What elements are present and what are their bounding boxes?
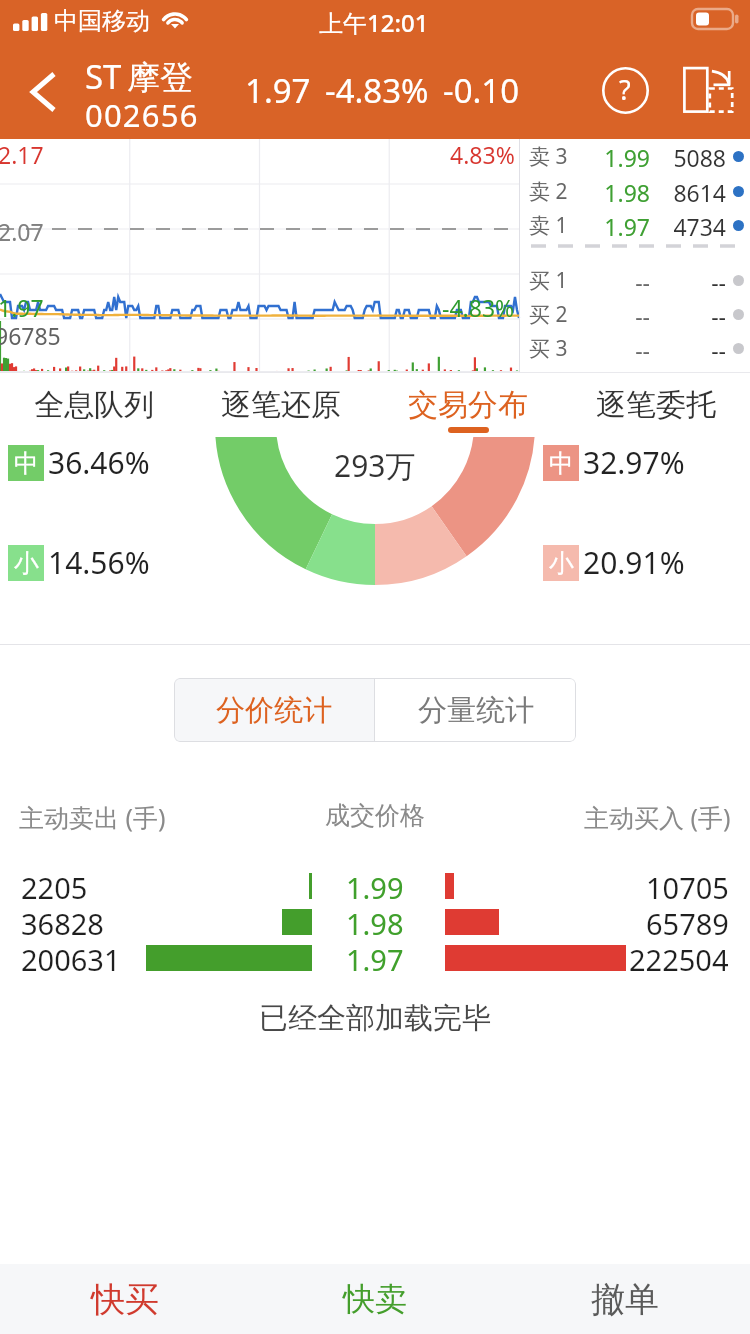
staticText: 10705 [646,868,729,904]
staticText: 2.07 [0,216,44,247]
staticText: 买 1 [529,266,568,294]
staticText: 成交价格 [325,800,425,831]
staticText: -4.83% [442,292,515,323]
staticText: 20.91% [583,542,685,583]
staticText: 36828 [21,904,104,940]
button[interactable]: 逐笔委托 [562,372,750,437]
staticText: 卖 2 [529,177,568,205]
staticText: 1.98 [346,904,404,940]
button[interactable]: Help [592,57,658,123]
staticText: 买 3 [529,334,568,362]
staticText: 卖 3 [529,142,568,170]
button[interactable]: 分量统计 [375,678,576,742]
staticText: 14.56% [48,542,150,583]
button[interactable]: 快买 [0,1264,250,1334]
staticText: -- [656,300,726,328]
staticText: ST 摩登 [85,54,193,99]
staticText: 002656 [85,94,199,136]
staticText: 1.97 [0,292,44,323]
button[interactable]: 撤单 [500,1264,750,1334]
staticText: 中 [14,448,39,479]
staticText: 逐笔还原 [221,386,341,424]
staticText: -- [656,266,726,294]
staticText: -- [568,300,650,328]
button[interactable]: 逐笔还原 [187,372,374,437]
staticText: 1.97 [568,211,650,239]
button[interactable]: 交易分布 [374,372,562,437]
staticText: 分价统计 [216,692,332,729]
button[interactable]: 全息队列 [0,372,187,437]
staticText: -- [568,334,650,362]
staticText: 2.17 [0,139,44,170]
staticText: ? [619,71,631,108]
staticText: 5088 [656,142,726,170]
staticText: 撤单 [591,1278,659,1321]
staticText: 全息队列 [34,386,154,424]
staticText: 交易分布 [408,386,528,424]
button[interactable]: Compare stocks [679,59,745,119]
staticText: 小 [14,548,39,579]
staticText: 卖 1 [529,211,568,239]
staticText: 已经全部加载完毕 [259,1000,491,1037]
staticText: -- [656,334,726,362]
staticText: 逐笔委托 [596,386,716,424]
staticText: 上午12:01 [319,6,429,39]
staticText: 4734 [656,211,726,239]
staticText: 快卖 [343,1279,407,1319]
staticText: 主动卖出 (手) [19,800,166,834]
staticText: 222504 [629,940,729,976]
staticText: 2205 [21,868,88,904]
button[interactable]: 快卖 [250,1264,500,1334]
staticText: 32.97% [583,442,685,483]
staticText: 65789 [646,904,729,940]
staticText: 中 [549,448,574,479]
staticText: 1.99 [568,142,650,170]
staticText: -4.83% [325,68,429,113]
staticText: 8614 [656,177,726,205]
staticText: 买 2 [529,300,568,328]
staticText: 快买 [91,1278,159,1321]
staticText: 中国移动 [54,6,150,36]
staticText: 4.83% [450,139,515,170]
button[interactable]: 分价统计 [174,678,374,742]
staticText: 1.98 [568,177,650,205]
staticText: 小 [549,548,574,579]
button[interactable]: Back [0,44,86,139]
staticText: 分量统计 [418,692,534,729]
staticText: 主动买入 (手) [584,800,731,834]
staticText: 1.99 [346,868,404,904]
staticText: 1.97 [245,68,311,113]
staticText: -- [568,266,650,294]
staticText: -0.10 [443,68,520,113]
staticText: 293万 [334,445,416,486]
staticText: 36.46% [48,442,150,483]
staticText: 1.97 [346,940,404,976]
staticText: 200631 [21,940,121,976]
staticText: 96785 [0,320,61,351]
